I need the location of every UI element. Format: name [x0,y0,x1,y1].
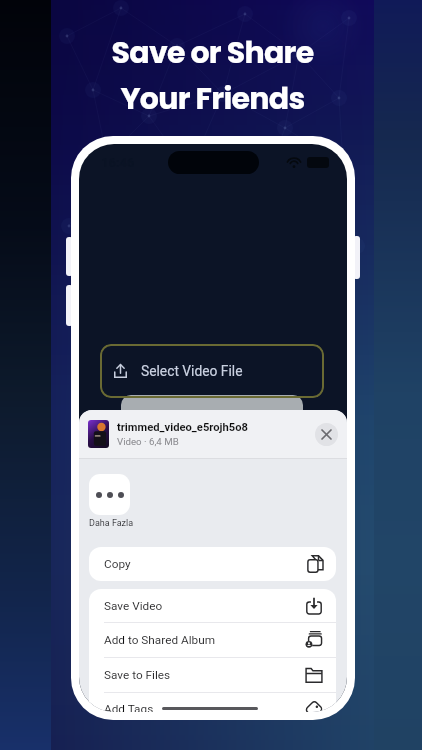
staticText: Your Friends [120,78,305,120]
staticText: Save or Share [111,32,314,74]
staticText: Select Video File [141,363,243,379]
staticText: Copy [104,557,305,571]
button[interactable]: Add to Shared Album [89,623,336,657]
button[interactable]: Daha Fazla [89,474,130,515]
button[interactable]: Save to Files [89,658,336,692]
button[interactable]: Add Tags [89,693,336,712]
staticText: Add Tags [104,702,305,712]
staticText: trimmed_video_e5rojh5o8 [117,421,248,434]
button[interactable]: Copy [89,547,336,581]
button[interactable]: Select Video File [100,344,324,398]
button[interactable]: Save Video [89,589,336,622]
staticText: Save Video [104,599,305,613]
staticText: Add to Shared Album [104,633,305,647]
staticText: Video · 6,4 MB [117,436,179,447]
staticText: Save to Files [104,668,305,682]
button[interactable]: Close [315,423,338,446]
staticText: Daha Fazla [89,518,134,529]
